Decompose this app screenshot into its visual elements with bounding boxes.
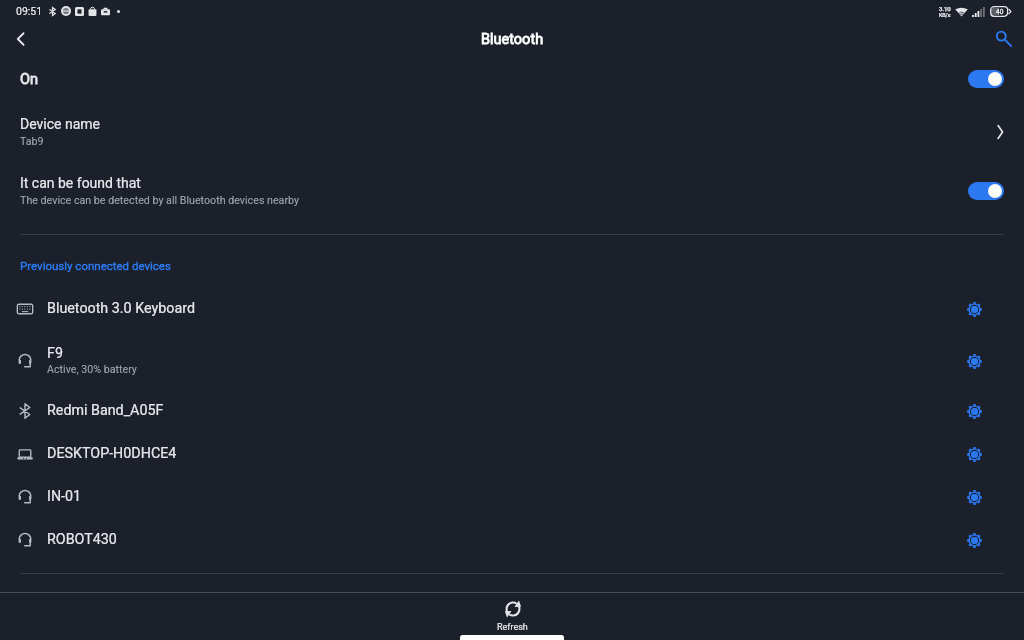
- button[interactable]: Toggle: [968, 182, 1004, 200]
- staticText: Active, 30% battery: [47, 363, 137, 376]
- button[interactable]: Redmi Band_A05F: [0, 389, 1024, 432]
- staticText: Redmi Band_A05F: [47, 402, 164, 419]
- button[interactable]: Bluetooth 3.0 Keyboard: [0, 287, 1024, 330]
- staticText: On: [20, 71, 38, 88]
- button[interactable]: Refresh: [475, 597, 550, 636]
- button[interactable]: Search: [988, 24, 1018, 54]
- button[interactable]: Device settings: [954, 341, 994, 381]
- button[interactable]: IN-01: [0, 475, 1024, 518]
- staticText: Bluetooth 3.0 Keyboard: [47, 300, 195, 317]
- button[interactable]: Device settings: [954, 434, 994, 474]
- staticText: 40: [996, 8, 1004, 16]
- staticText: Device name: [20, 116, 100, 132]
- staticText: 09:51: [16, 5, 43, 17]
- staticText: It can be found that: [20, 175, 141, 191]
- button[interactable]: Device settings: [954, 391, 994, 431]
- button[interactable]: It can be found that: [0, 163, 1024, 219]
- button[interactable]: Toggle: [968, 70, 1004, 88]
- staticText: Refresh: [497, 622, 528, 633]
- button[interactable]: Edit device name: [988, 120, 1012, 144]
- button[interactable]: Device name: [0, 104, 1024, 160]
- button[interactable]: DESKTOP-H0DHCE4: [0, 432, 1024, 475]
- button[interactable]: On: [0, 58, 1024, 100]
- staticText: F9: [47, 345, 63, 362]
- button[interactable]: Device settings: [954, 477, 994, 517]
- button[interactable]: ROBOT430: [0, 518, 1024, 561]
- button[interactable]: Device settings: [954, 520, 994, 560]
- staticText: KB/s: [939, 12, 951, 18]
- staticText: The device can be detected by all Blueto…: [20, 194, 300, 207]
- button[interactable]: Device settings: [954, 289, 994, 329]
- staticText: Tab9: [20, 135, 44, 148]
- button[interactable]: Back: [6, 24, 36, 54]
- staticText: Previously connected devices: [20, 259, 171, 272]
- staticText: ROBOT430: [47, 531, 117, 548]
- staticText: 3.10: [939, 5, 951, 12]
- staticText: IN-01: [47, 488, 82, 505]
- button[interactable]: F9: [0, 339, 1024, 382]
- staticText: DESKTOP-H0DHCE4: [47, 445, 177, 462]
- staticText: Bluetooth: [481, 31, 544, 48]
